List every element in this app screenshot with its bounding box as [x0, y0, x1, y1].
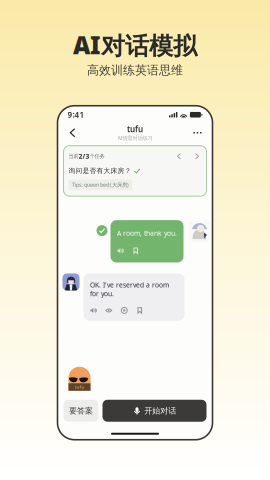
- staticText: 高效训练英语思维: [87, 63, 183, 78]
- staticText: 开始对话: [144, 406, 176, 416]
- button[interactable]: Back: [63, 124, 81, 142]
- staticText: 询问是否有大床房？: [68, 167, 131, 175]
- staticText: 2/3: [78, 152, 89, 161]
- button[interactable]: Previous task: [174, 151, 183, 162]
- staticText: Tips: queen bed (大床房): [72, 181, 129, 188]
- button[interactable]: Next task: [192, 151, 201, 162]
- staticText: 个任务: [89, 153, 104, 160]
- button[interactable]: More: [188, 124, 206, 142]
- staticText: A room, thank you.: [117, 229, 177, 237]
- staticText: OK. I've reserved a room for you.: [90, 280, 169, 298]
- staticText: AI情景对话练习: [117, 134, 152, 142]
- staticText: 9:41: [67, 109, 84, 120]
- button[interactable]: 要答案: [63, 400, 98, 422]
- staticText: AI对话模拟: [73, 29, 197, 61]
- staticText: 要答案: [69, 406, 93, 416]
- staticText: tufu: [74, 384, 84, 390]
- staticText: tufu: [127, 124, 143, 134]
- button[interactable]: 开始对话: [102, 400, 206, 422]
- staticText: 当前: [68, 153, 78, 160]
